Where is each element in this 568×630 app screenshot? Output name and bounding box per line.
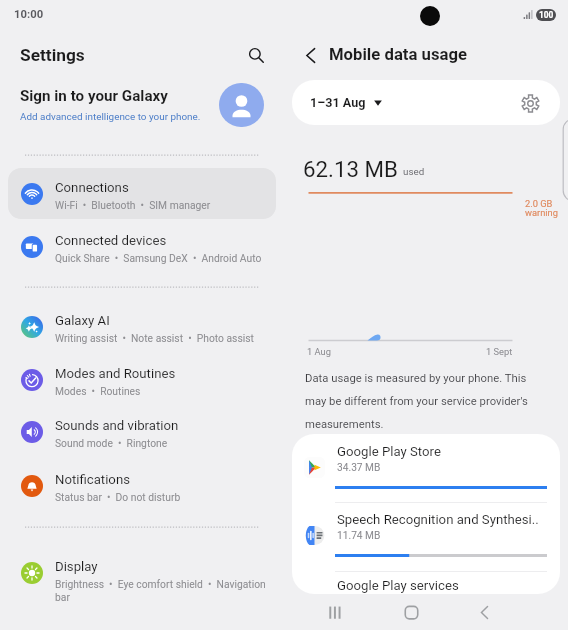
button[interactable]: 1–31 Aug [306, 89, 386, 116]
staticText: Writing assist • Note assist • Photo ass… [55, 332, 277, 344]
button[interactable]: Back [298, 42, 325, 69]
button[interactable]: Galaxy AI [8, 303, 276, 351]
staticText: 2.0 GB [525, 198, 553, 209]
staticText: Status bar • Do not disturb [55, 491, 277, 503]
button[interactable]: Modes and Routines [8, 356, 276, 404]
staticText: Wi-Fi • Bluetooth • SIM manager [55, 199, 277, 211]
button[interactable]: Recents [321, 598, 350, 627]
staticText: Sign in to your Galaxy [20, 87, 168, 105]
staticText: 1 Sept [486, 346, 513, 357]
staticText: Connected devices [55, 233, 167, 248]
staticText: Modes and Routines [55, 366, 176, 381]
button[interactable]: Sign in to your Galaxy [0, 83, 284, 127]
button[interactable]: Home [397, 598, 426, 627]
button[interactable]: Google Play Store [292, 434, 560, 502]
staticText: warning [525, 207, 558, 218]
button[interactable]: Speech Recognition and Synthesi.. [292, 502, 560, 570]
staticText: 10:00 [14, 8, 44, 21]
staticText: Notifications [55, 472, 130, 487]
staticText: Google Play services [337, 578, 459, 593]
button[interactable]: Connections [8, 170, 276, 218]
staticText: Sound mode • Ringtone [55, 437, 277, 449]
staticText: Connections [55, 180, 129, 195]
button[interactable]: Connected devices [8, 223, 276, 271]
button[interactable]: Notifications [8, 462, 276, 510]
staticText: Mobile data usage [329, 45, 468, 65]
staticText: Add advanced intelligence to your phone. [20, 111, 201, 123]
staticText: 1 Aug [307, 346, 331, 357]
staticText: Quick Share • Samsung DeX • Android Auto [55, 252, 277, 264]
staticText: Display [55, 559, 98, 574]
button[interactable]: Display [8, 544, 276, 602]
staticText: Brightness • Eye comfort shield • Naviga… [55, 578, 277, 604]
staticText: 34.37 MB [337, 462, 381, 474]
staticText: 62.13 MB [303, 156, 398, 182]
staticText: Modes • Routines [55, 385, 277, 397]
staticText: Speech Recognition and Synthesi.. [337, 512, 555, 527]
staticText: Settings [20, 45, 85, 65]
button[interactable]: Search [243, 42, 270, 69]
button[interactable]: Sounds and vibration [8, 408, 276, 456]
staticText: 100 [539, 10, 554, 20]
staticText: 1–31 Aug [310, 95, 366, 110]
button[interactable]: Back [470, 598, 499, 627]
staticText: 11.74 MB [337, 530, 381, 542]
staticText: Galaxy AI [55, 313, 110, 328]
staticText: Google Play Store [337, 444, 555, 459]
staticText: used [403, 166, 425, 177]
button[interactable]: Data usage settings [521, 94, 540, 113]
staticText: Sounds and vibration [55, 418, 179, 433]
staticText: Data usage is measured by your phone. Th… [305, 372, 534, 431]
